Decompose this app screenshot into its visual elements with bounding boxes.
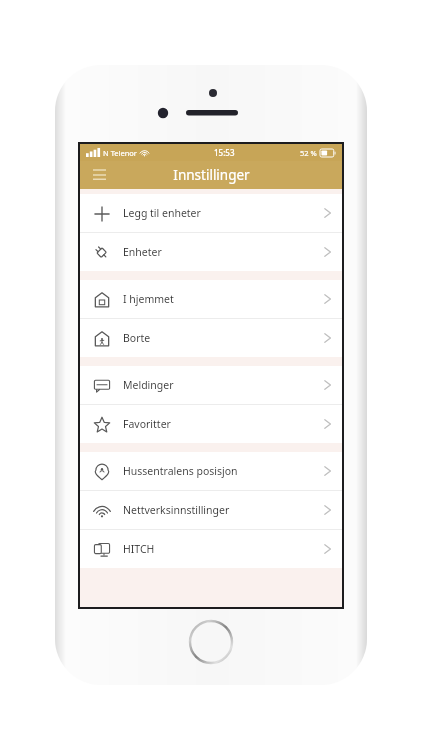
button[interactable]: Enheter xyxy=(80,233,342,271)
button[interactable]: Favoritter xyxy=(80,405,342,443)
button[interactable]: HITCH xyxy=(80,530,342,568)
staticText: I hjemmet xyxy=(123,292,174,306)
staticText: Favoritter xyxy=(123,417,171,431)
staticText: 52 % xyxy=(300,148,317,158)
staticText: Innstillinger xyxy=(173,166,250,184)
staticText: Legg til enheter xyxy=(123,206,201,220)
button[interactable]: Borte xyxy=(80,319,342,357)
button[interactable]: Menu xyxy=(86,162,112,188)
staticText: Nettverksinnstillinger xyxy=(123,503,230,517)
staticText: HITCH xyxy=(123,542,155,556)
staticText: Meldinger xyxy=(123,378,174,392)
staticText: Hussentralens posisjon xyxy=(123,464,238,478)
staticText: Borte xyxy=(123,331,151,345)
button[interactable]: Legg til enheter xyxy=(80,194,342,232)
button[interactable]: I hjemmet xyxy=(80,280,342,318)
staticText: 15:53 xyxy=(214,147,235,158)
staticText: N Telenor xyxy=(103,148,137,158)
staticText: Enheter xyxy=(123,245,162,259)
button[interactable]: Meldinger xyxy=(80,366,342,404)
button[interactable]: Hussentralens posisjon xyxy=(80,452,342,490)
button[interactable]: Nettverksinnstillinger xyxy=(80,491,342,529)
